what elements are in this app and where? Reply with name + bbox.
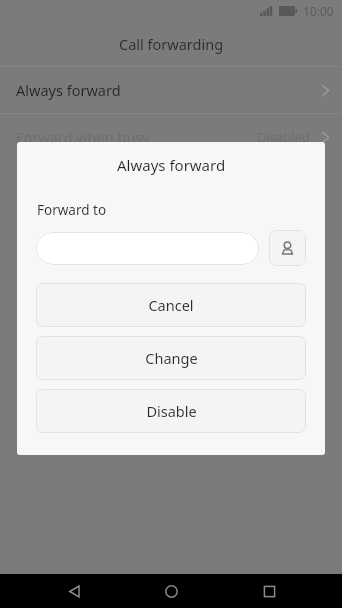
staticText: Disabled <box>257 128 311 146</box>
button[interactable] <box>36 232 259 265</box>
staticText: Forward when busy <box>16 127 150 147</box>
button[interactable]: Always forward <box>0 67 342 113</box>
staticText: Always forward <box>16 80 121 100</box>
button[interactable]: Choose contact <box>269 230 306 266</box>
staticText: Change <box>145 348 198 368</box>
staticText: Always forward <box>117 155 226 175</box>
staticText: Forward to <box>37 201 107 219</box>
button[interactable]: Cancel <box>36 283 306 327</box>
button[interactable]: Back <box>50 574 98 608</box>
staticText: Disable <box>146 401 197 421</box>
staticText: Call forwarding <box>119 34 224 54</box>
button[interactable]: Forward when busy <box>0 114 342 160</box>
button[interactable]: Disable <box>36 389 306 433</box>
staticText: 10:00 <box>303 3 334 19</box>
button[interactable]: Change <box>36 336 306 380</box>
staticText: Cancel <box>148 295 194 315</box>
button[interactable]: Recent apps <box>245 574 293 608</box>
button[interactable]: Home <box>147 574 195 608</box>
